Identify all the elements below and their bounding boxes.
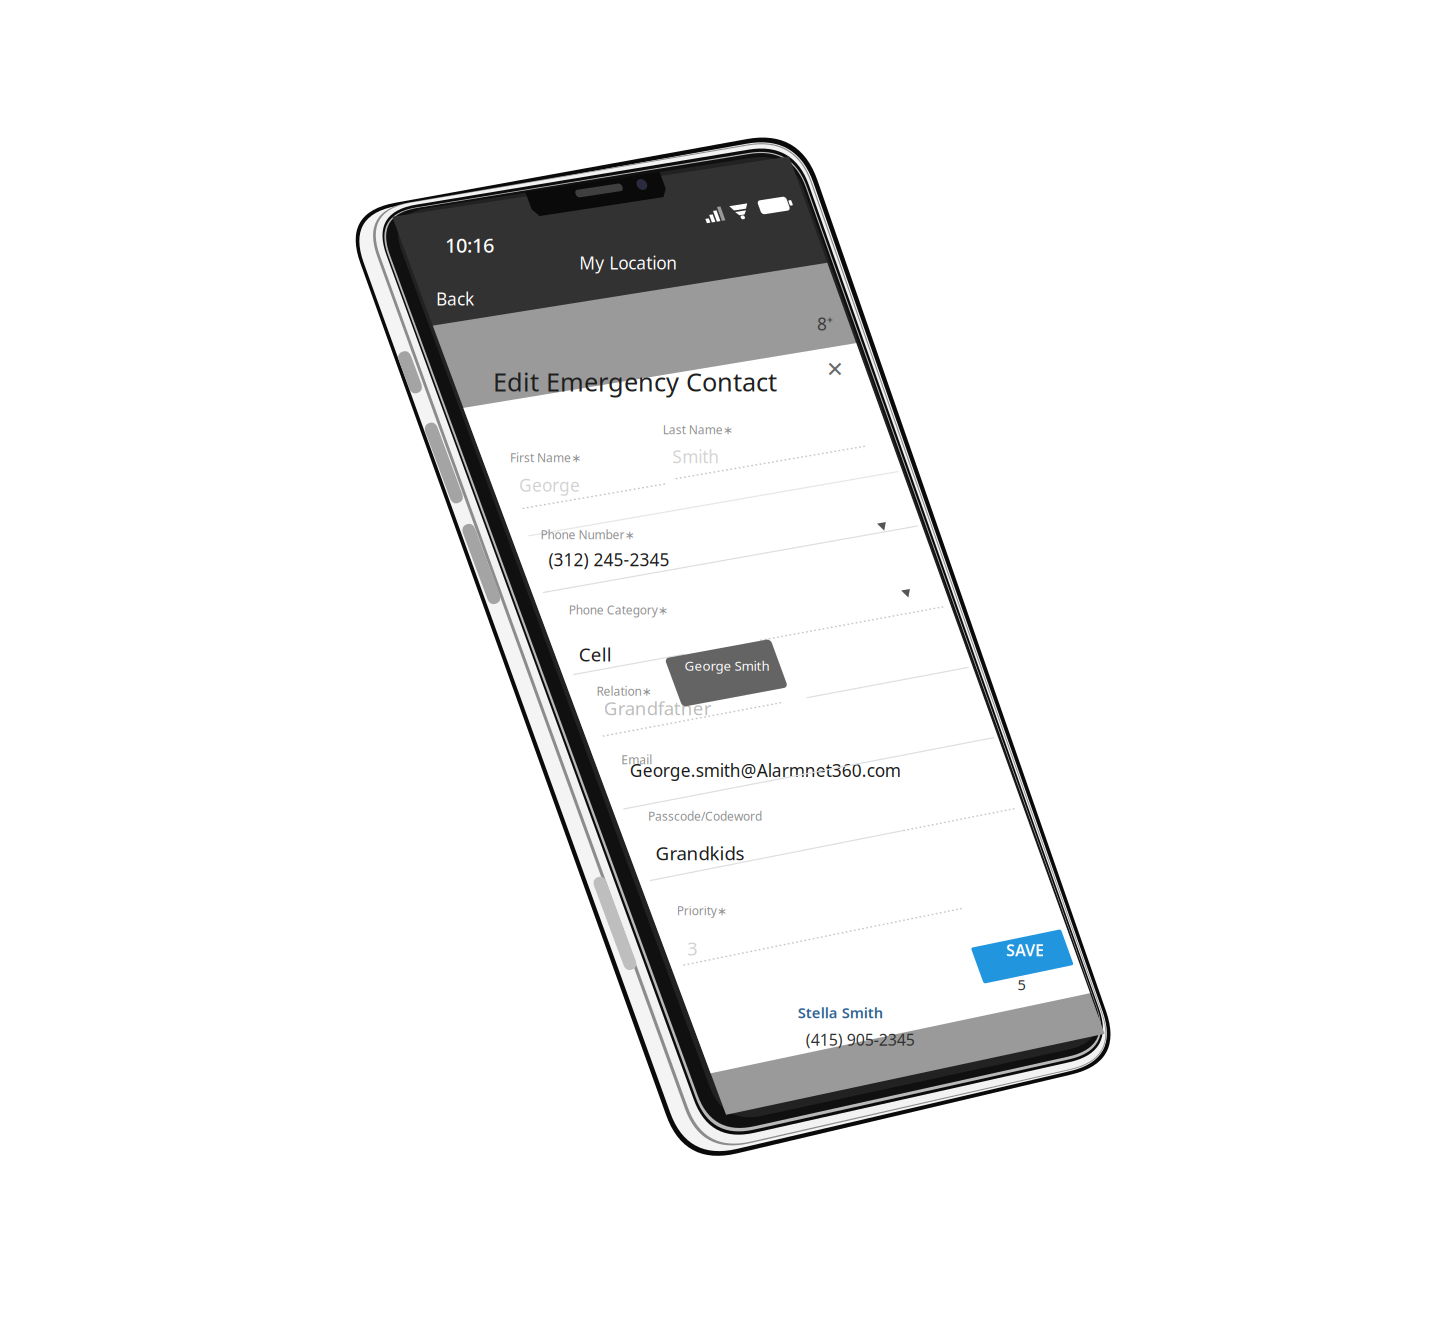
staticText: Cell [579, 642, 612, 667]
button[interactable]: Add contact [0, 0, 1446, 1318]
staticText: Smith [672, 445, 719, 468]
staticText: 5 [1017, 975, 1025, 994]
staticText: George [519, 474, 580, 497]
button[interactable]: SAVE [0, 0, 1446, 1318]
staticText: My Location [579, 251, 677, 274]
staticText: SAVE [1006, 939, 1044, 961]
staticText: George Smith [684, 657, 769, 674]
staticText: Stella Smith [798, 1003, 883, 1022]
staticText: Back [436, 287, 474, 310]
button[interactable]: Back [0, 0, 1446, 1318]
button[interactable]: Close [0, 0, 1446, 1318]
staticText: Email [621, 752, 652, 768]
staticText: Priority∗ [677, 903, 727, 919]
staticText: (312) 245-2345 [548, 548, 669, 571]
staticText: Last Name∗ [663, 422, 733, 438]
staticText: (415) 905-2345 [806, 1029, 915, 1050]
staticText: Grandfather [604, 695, 712, 720]
button[interactable]: My Location [0, 0, 1446, 1318]
staticText: First Name∗ [510, 449, 581, 465]
staticText: Phone Number∗ [540, 527, 634, 542]
staticText: 10:16 [445, 232, 494, 258]
staticText: ✕ [826, 357, 844, 381]
staticText: Edit Emergency Contact [493, 365, 777, 398]
staticText: 8⁺ [817, 312, 833, 335]
staticText: Phone Category∗ [569, 602, 668, 618]
staticText: 3 [687, 936, 698, 961]
staticText: Passcode/Codeword [648, 808, 762, 824]
staticText: Grandkids [655, 841, 744, 865]
staticText: Relation∗ [596, 683, 651, 699]
staticText: George.smith@Alarmnet360.com [630, 759, 901, 782]
